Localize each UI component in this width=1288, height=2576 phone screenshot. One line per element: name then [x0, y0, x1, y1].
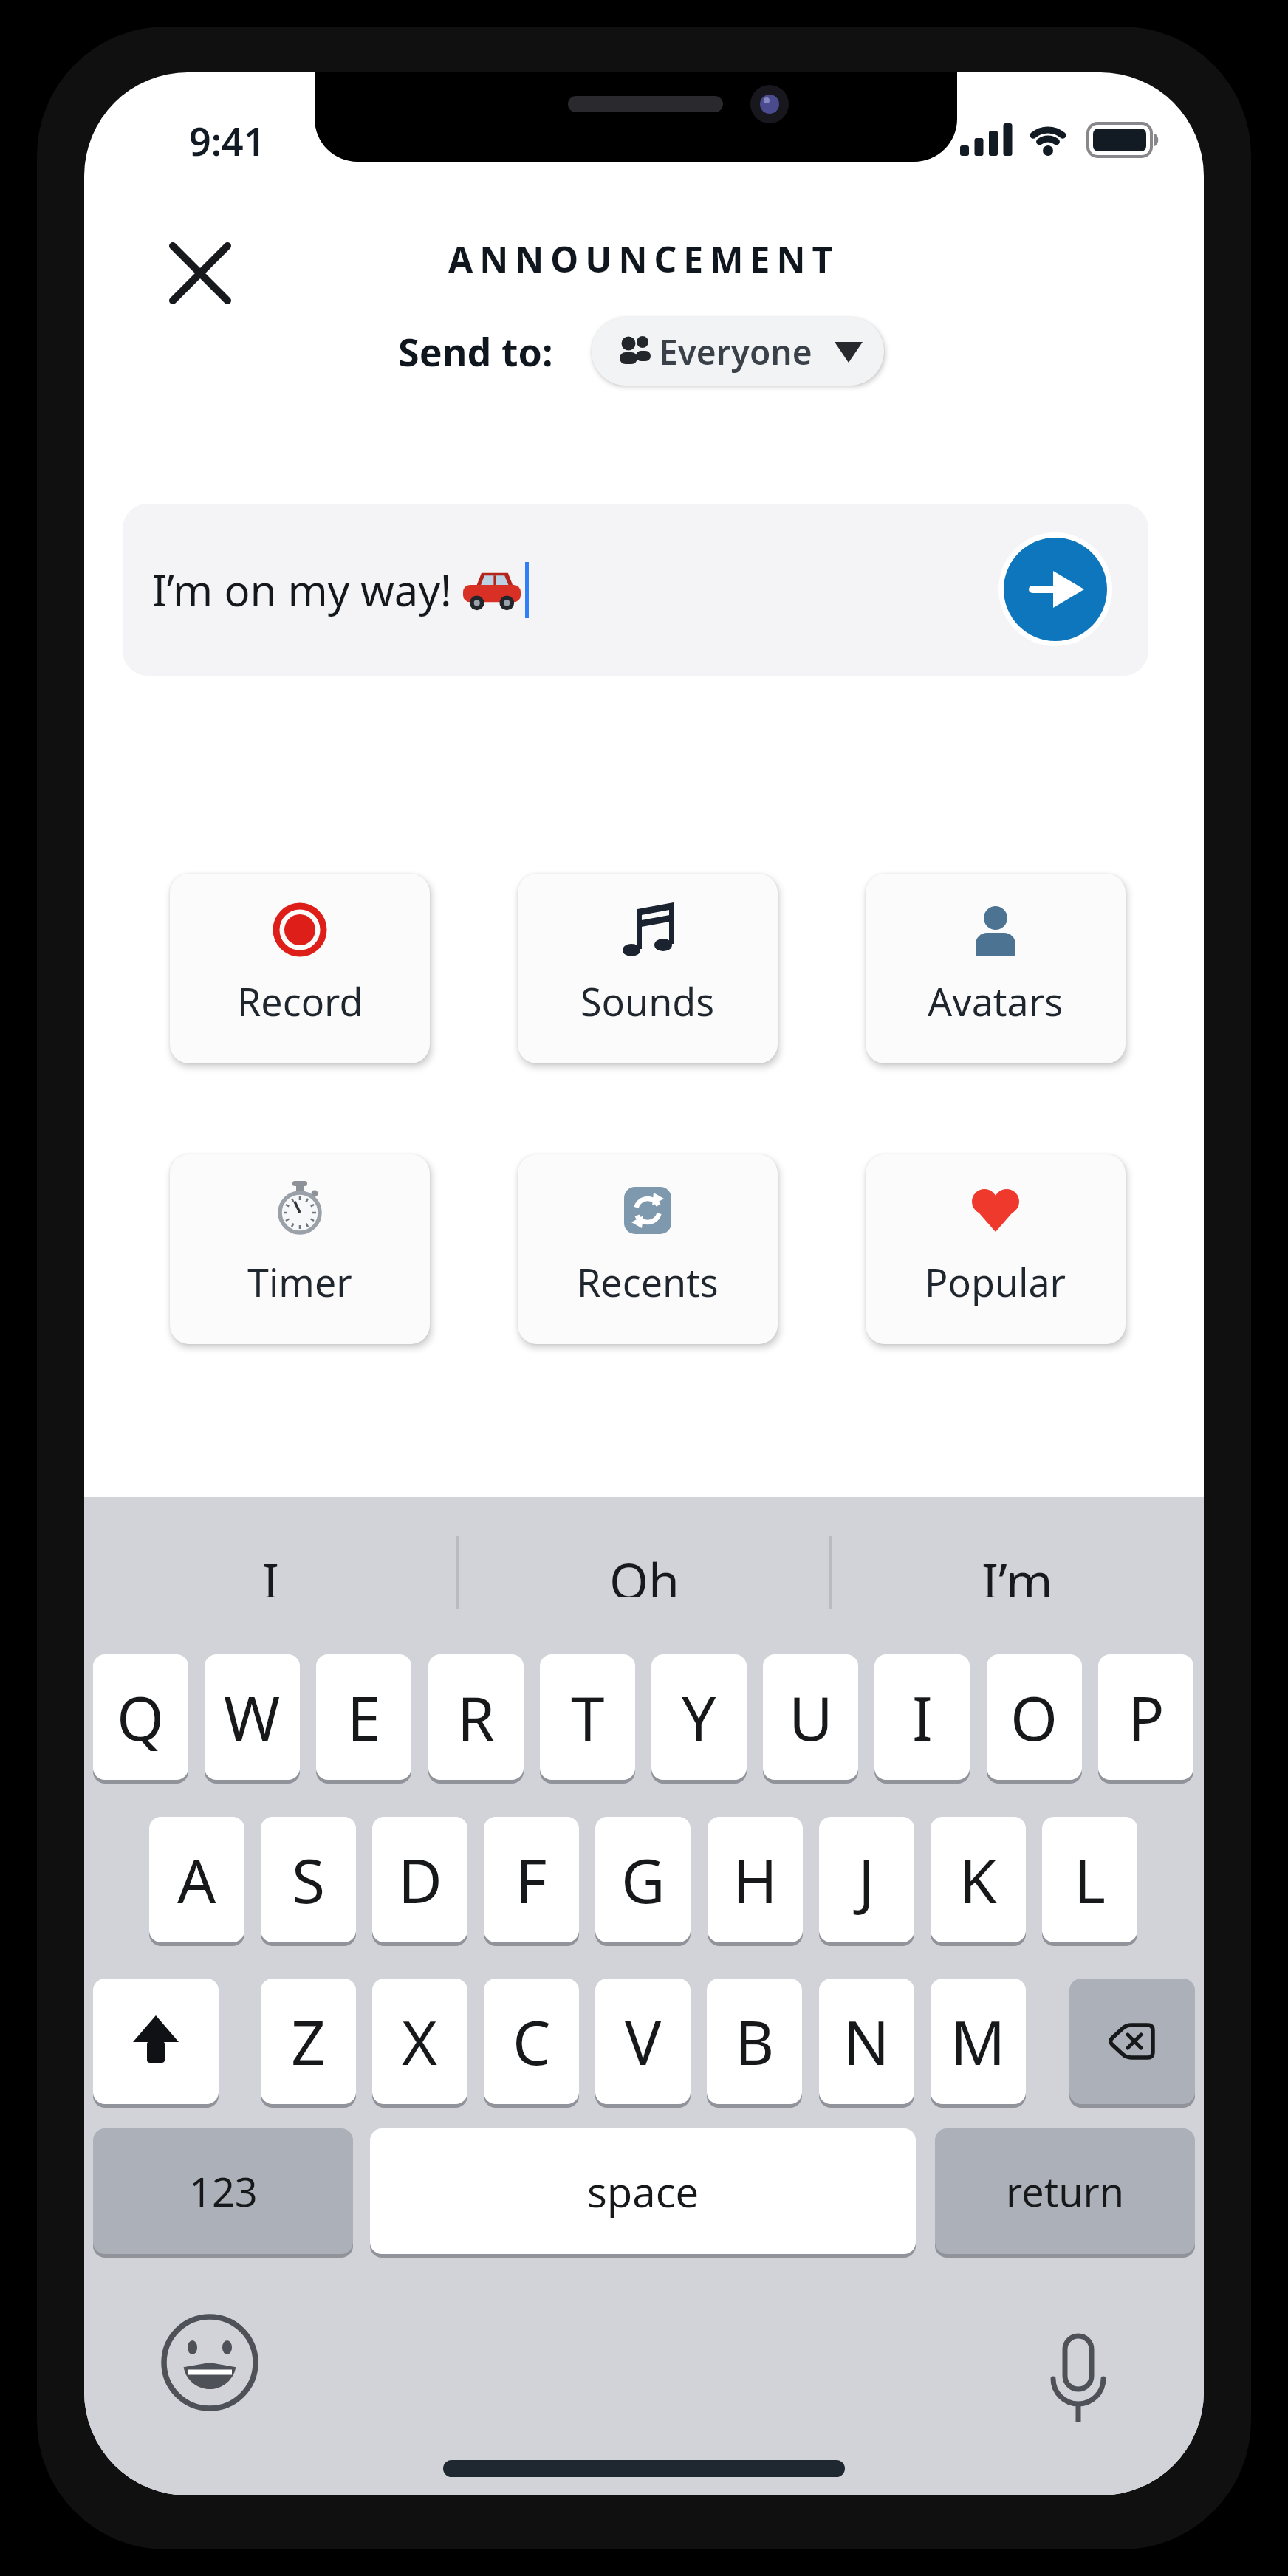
button[interactable]: N — [819, 1979, 914, 2104]
button[interactable]: X — [372, 1979, 467, 2104]
button[interactable]: H — [708, 1817, 803, 1942]
button[interactable]: S — [261, 1817, 356, 1942]
staticText: space — [587, 2163, 699, 2219]
button[interactable]: M — [931, 1979, 1026, 2104]
button[interactable] — [1023, 2329, 1134, 2439]
staticText: X — [402, 2000, 438, 2083]
staticText: I — [912, 1676, 933, 1758]
staticText: B — [735, 2000, 775, 2083]
button[interactable]: D — [372, 1817, 467, 1942]
staticText: W — [224, 1676, 281, 1758]
button[interactable]: Q — [93, 1654, 188, 1780]
staticText: C — [513, 2000, 551, 2083]
button[interactable]: J — [819, 1817, 914, 1942]
staticText: I’m — [982, 1546, 1053, 1597]
button[interactable] — [831, 1497, 1204, 1654]
button[interactable]: Popular — [866, 1154, 1126, 1344]
staticText: I’m on my way! — [152, 561, 463, 619]
button[interactable]: R — [428, 1654, 524, 1780]
button[interactable]: Z — [261, 1979, 356, 2104]
staticText: M — [950, 2000, 1006, 2083]
staticText: K — [959, 1838, 997, 1921]
button[interactable]: 123 — [93, 2128, 353, 2254]
button[interactable] — [1069, 1979, 1195, 2104]
staticText: Popular — [925, 1256, 1066, 1307]
staticText: Timer — [247, 1256, 352, 1307]
staticText: Send to: — [398, 325, 553, 377]
staticText: S — [292, 1838, 326, 1921]
staticText: R — [457, 1676, 496, 1758]
staticText: 9:41 — [189, 114, 266, 167]
button[interactable]: I’m on my way! — [123, 504, 1148, 676]
button[interactable] — [158, 2310, 261, 2414]
button[interactable] — [93, 1979, 219, 2104]
button[interactable]: O — [987, 1654, 1082, 1780]
button[interactable]: P — [1098, 1654, 1193, 1780]
button[interactable] — [457, 1497, 831, 1654]
staticText: Record — [237, 975, 363, 1027]
staticText: O — [1010, 1676, 1058, 1758]
staticText: P — [1128, 1676, 1165, 1758]
button[interactable]: L — [1042, 1817, 1137, 1942]
staticText: A — [177, 1838, 216, 1921]
button[interactable] — [84, 1497, 457, 1654]
staticText: U — [789, 1676, 833, 1758]
staticText: Recents — [577, 1256, 719, 1307]
button[interactable]: A — [149, 1817, 244, 1942]
staticText: G — [621, 1838, 665, 1921]
button[interactable]: Sounds — [518, 874, 778, 1063]
staticText: ANNOUNCEMENT — [448, 235, 840, 283]
button[interactable]: I — [874, 1654, 970, 1780]
staticText: Everyone — [659, 329, 812, 375]
staticText: F — [515, 1838, 547, 1921]
button[interactable]: Avatars — [866, 874, 1126, 1063]
staticText: I — [262, 1546, 280, 1597]
staticText: Z — [291, 2000, 326, 2083]
staticText: T — [571, 1676, 605, 1758]
staticText: L — [1074, 1838, 1106, 1921]
button[interactable]: Recents — [518, 1154, 778, 1344]
button[interactable]: G — [595, 1817, 691, 1942]
staticText: Avatars — [928, 975, 1063, 1027]
staticText: V — [625, 2000, 662, 2083]
staticText: Sounds — [580, 975, 715, 1027]
button[interactable]: Y — [651, 1654, 747, 1780]
staticText: E — [347, 1676, 381, 1758]
button[interactable]: Record — [170, 874, 430, 1063]
button[interactable] — [1004, 538, 1107, 641]
staticText: J — [858, 1838, 875, 1921]
staticText: D — [398, 1838, 442, 1921]
button[interactable]: U — [763, 1654, 858, 1780]
button[interactable]: K — [931, 1817, 1026, 1942]
staticText: N — [843, 2000, 890, 2083]
button[interactable]: space — [370, 2128, 916, 2254]
button[interactable]: T — [540, 1654, 635, 1780]
staticText: 123 — [189, 2164, 258, 2219]
button[interactable]: Everyone — [592, 317, 884, 386]
staticText: H — [733, 1838, 778, 1921]
button[interactable]: W — [205, 1654, 300, 1780]
button[interactable]: C — [484, 1979, 579, 2104]
staticText: Oh — [609, 1546, 680, 1597]
button[interactable]: Timer — [170, 1154, 430, 1344]
button[interactable] — [167, 240, 233, 306]
button[interactable]: V — [595, 1979, 691, 2104]
button[interactable]: B — [707, 1979, 802, 2104]
staticText: Q — [117, 1676, 165, 1758]
staticText: return — [1006, 2164, 1125, 2219]
button[interactable]: E — [316, 1654, 411, 1780]
button[interactable]: return — [935, 2128, 1195, 2254]
button[interactable]: F — [484, 1817, 579, 1942]
staticText: Y — [682, 1676, 716, 1758]
